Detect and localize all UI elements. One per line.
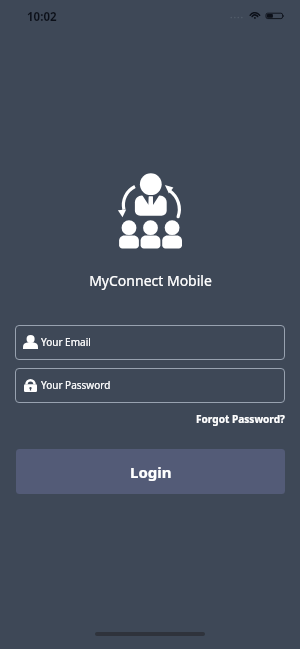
staticText: Your Password — [41, 378, 111, 392]
button[interactable]: Login — [16, 449, 285, 494]
button[interactable]: Forgot Password? — [192, 410, 289, 428]
staticText: Login — [130, 462, 172, 482]
staticText: MyConnect Mobile — [89, 271, 212, 290]
staticText: Your Email — [41, 335, 91, 349]
button[interactable]: Your Email — [15, 325, 285, 360]
staticText: Forgot Password? — [196, 412, 285, 426]
staticText: 10:02 — [27, 9, 57, 25]
button[interactable]: Your Password — [15, 368, 285, 403]
